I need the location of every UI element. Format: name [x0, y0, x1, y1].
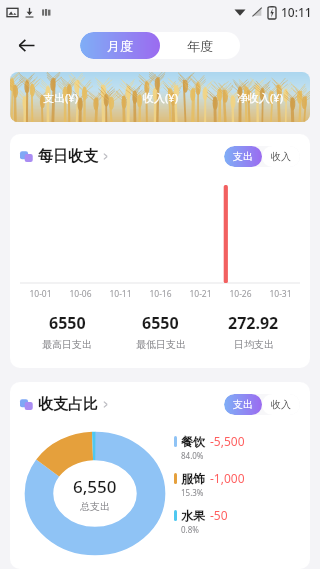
staticText: 最高日支出 — [42, 338, 92, 351]
button[interactable]: 月度 — [80, 32, 160, 59]
staticText: 收入 — [271, 398, 291, 411]
staticText: 15.3% — [181, 487, 204, 498]
staticText: 月度 — [107, 38, 133, 54]
staticText: 年度 — [187, 38, 213, 54]
staticText: 收支占比 — [38, 395, 98, 414]
staticText: 6550 — [142, 312, 179, 334]
button[interactable]: 年度 — [160, 32, 240, 59]
staticText: 收入(¥) — [143, 90, 178, 105]
button[interactable]: 支出 — [224, 146, 262, 167]
staticText: 10-31 — [269, 288, 292, 300]
staticText: 10:11 — [281, 4, 312, 20]
staticText: 水果 — [181, 508, 205, 523]
staticText: 总支出 — [80, 500, 110, 513]
staticText: -5,500 — [210, 433, 245, 449]
button[interactable]: Back — [8, 27, 44, 63]
button[interactable]: 水果 — [174, 507, 300, 535]
staticText: -50 — [210, 507, 228, 523]
button[interactable]: 收支占比 — [20, 395, 110, 414]
staticText: 10-16 — [149, 288, 172, 300]
staticText: 0.8% — [181, 524, 199, 535]
staticText: 10-11 — [109, 288, 132, 300]
staticText: 10-06 — [69, 288, 92, 300]
staticText: 272.92 — [228, 312, 279, 334]
staticText: 最低日支出 — [136, 338, 186, 351]
staticText: 10-26 — [229, 288, 252, 300]
staticText: 日均支出 — [234, 338, 274, 351]
staticText: 84.0% — [181, 450, 204, 461]
staticText: 10-21 — [189, 288, 212, 300]
button[interactable]: 餐饮 — [174, 433, 300, 461]
staticText: 支出(¥) — [43, 90, 78, 105]
button[interactable]: 服饰 — [174, 470, 300, 498]
button[interactable]: 每日收支 — [20, 147, 110, 166]
staticText: 10-01 — [29, 288, 52, 300]
staticText: 6,550 — [73, 475, 117, 498]
staticText: 6550 — [49, 312, 86, 334]
button[interactable]: 支出 — [224, 394, 262, 415]
staticText: 净收入(¥) — [237, 90, 283, 105]
staticText: 支出 — [233, 398, 253, 411]
button[interactable]: 收入 — [262, 146, 300, 167]
staticText: 收入 — [271, 150, 291, 163]
staticText: 支出 — [233, 150, 253, 163]
button[interactable]: 支出(¥) — [10, 72, 310, 122]
staticText: 服饰 — [181, 471, 205, 486]
button[interactable]: 收入 — [262, 394, 300, 415]
staticText: 餐饮 — [181, 434, 205, 449]
staticText: 每日收支 — [38, 147, 98, 166]
staticText: -1,000 — [210, 470, 245, 486]
